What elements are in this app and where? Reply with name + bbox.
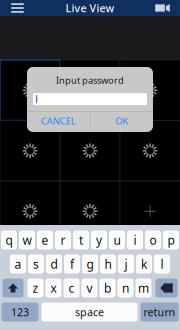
staticText: h — [104, 256, 111, 272]
button[interactable]: OK — [90, 112, 153, 130]
staticText: b — [104, 280, 111, 296]
button[interactable]: e — [37, 230, 53, 249]
button[interactable]: Camera channel — [0, 181, 60, 241]
staticText: r — [60, 232, 65, 248]
staticText: u — [113, 232, 120, 248]
staticText: g — [86, 256, 93, 272]
button[interactable]: m — [135, 278, 151, 297]
staticText: p — [167, 232, 174, 248]
button[interactable]: t — [73, 230, 89, 249]
button[interactable]: Camera channel — [120, 120, 180, 181]
button[interactable]: f — [64, 254, 80, 273]
button[interactable]: v — [81, 278, 97, 297]
button[interactable]: 123 — [1, 302, 38, 321]
staticText: w — [22, 232, 31, 248]
staticText: Input password — [56, 74, 124, 86]
staticText: OK — [115, 115, 128, 127]
button[interactable]: c — [63, 278, 79, 297]
staticText: c — [68, 280, 74, 296]
staticText: 123 — [11, 305, 29, 319]
staticText: z — [32, 280, 38, 296]
staticText: s — [33, 256, 39, 272]
button[interactable]: Camera channel — [60, 60, 120, 120]
staticText: e — [41, 232, 48, 248]
staticText: d — [50, 256, 57, 272]
staticText: a — [14, 256, 21, 272]
staticText: space — [75, 305, 104, 319]
button[interactable]: o — [145, 230, 161, 249]
staticText: CANCEL — [41, 115, 76, 127]
button[interactable]: b — [99, 278, 115, 297]
staticText: q — [5, 232, 12, 248]
button[interactable]: g — [82, 254, 98, 273]
button[interactable]: u — [109, 230, 125, 249]
button[interactable]: Camera channel — [0, 120, 60, 181]
button[interactable]: Camera channel — [0, 60, 60, 120]
button[interactable]: Camera channel — [120, 60, 180, 120]
button[interactable]: p — [163, 230, 179, 249]
button[interactable]: Camera channel — [60, 120, 120, 181]
button[interactable]: w — [19, 230, 35, 249]
button[interactable]: k — [136, 254, 152, 273]
button[interactable]: i — [127, 230, 143, 249]
staticText: f — [70, 256, 74, 272]
staticText: y — [96, 232, 102, 248]
button[interactable]: y — [91, 230, 107, 249]
staticText: k — [141, 256, 147, 272]
button[interactable]: space — [41, 302, 137, 321]
button[interactable]: j — [118, 254, 134, 273]
button[interactable]: Record video — [145, 0, 180, 16]
button[interactable]: Add camera — [120, 181, 180, 241]
button[interactable]: CANCEL — [27, 112, 90, 130]
button[interactable]: n — [117, 278, 133, 297]
button[interactable]: q — [1, 230, 17, 249]
button[interactable]: Shift — [2, 278, 23, 297]
button[interactable]: l — [154, 254, 170, 273]
staticText: x — [50, 280, 56, 296]
button[interactable]: x — [45, 278, 61, 297]
button[interactable]: Menu — [0, 0, 35, 16]
button[interactable]: Delete — [155, 278, 177, 297]
staticText: l — [160, 256, 163, 272]
button[interactable]: a — [10, 254, 26, 273]
staticText: v — [86, 280, 92, 296]
staticText: t — [79, 232, 83, 248]
staticText: j — [124, 256, 127, 272]
staticText: Live View — [65, 1, 114, 15]
button[interactable]: d — [46, 254, 62, 273]
staticText: return — [143, 305, 175, 319]
button[interactable]: return — [140, 302, 178, 321]
button[interactable]: h — [100, 254, 116, 273]
button[interactable]: Camera channel — [60, 181, 120, 241]
staticText: n — [122, 280, 129, 296]
staticText: i — [133, 232, 136, 248]
button[interactable]: r — [55, 230, 71, 249]
staticText: m — [138, 280, 149, 296]
staticText: o — [149, 232, 156, 248]
button[interactable]: s — [28, 254, 44, 273]
button[interactable]: z — [27, 278, 43, 297]
